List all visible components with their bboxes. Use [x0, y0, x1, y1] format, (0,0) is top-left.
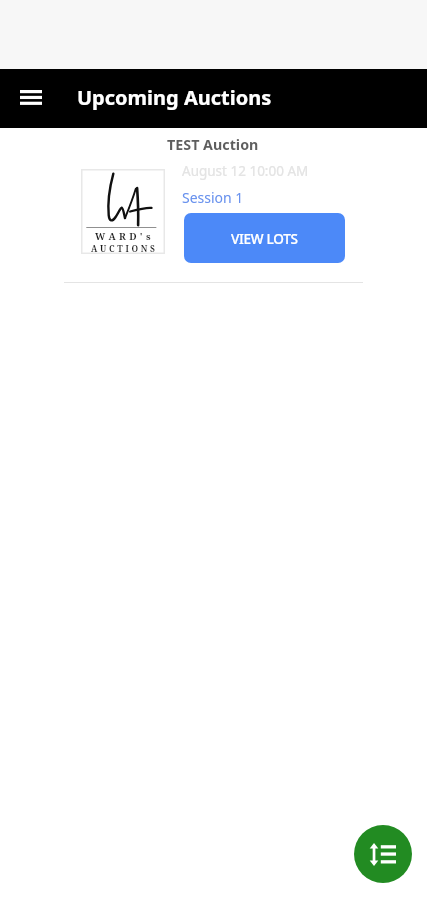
button[interactable]: VIEW LOTS — [184, 213, 345, 263]
staticText: Upcoming Auctions — [77, 84, 272, 111]
staticText: A U C T I O N S — [91, 243, 156, 254]
staticText: W A R D ' s — [95, 230, 151, 243]
staticText: VIEW LOTS — [231, 229, 298, 248]
staticText: Session 1 — [182, 188, 244, 207]
button[interactable]: Menu — [7, 75, 55, 123]
button[interactable]: Sort — [354, 825, 412, 883]
staticText: TEST Auction — [167, 135, 259, 154]
staticText: August 12 10:00 AM — [182, 162, 309, 180]
